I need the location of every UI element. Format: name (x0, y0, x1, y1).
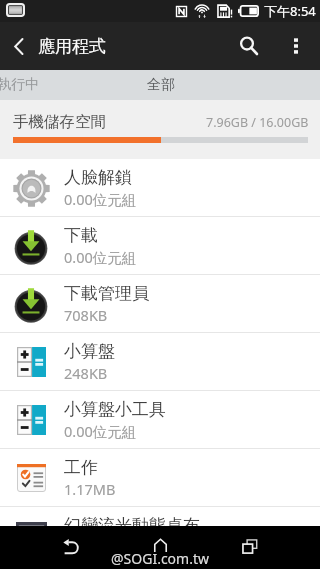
button[interactable]: 小算盤 (0, 333, 320, 390)
button[interactable]: 下載 (0, 217, 320, 274)
staticText: 0.00位元組 (64, 421, 137, 441)
staticText: 0.00位元組 (64, 247, 137, 267)
button[interactable]: 執行中 (0, 70, 70, 100)
button[interactable]: 小算盤小工具 (0, 391, 320, 448)
staticText: 248KB (64, 363, 108, 383)
button[interactable]: More options (272, 22, 320, 70)
staticText: 應用程式 (38, 36, 106, 57)
staticText: 0.00位元組 (64, 537, 137, 557)
staticText: 7.96GB / 16.00GB (206, 114, 309, 131)
staticText: 全部 (147, 76, 175, 94)
button[interactable]: Search (226, 22, 272, 70)
staticText: 幻變流光動態桌布 (64, 515, 200, 536)
button[interactable]: Home (116, 526, 204, 569)
staticText: 手機儲存空間 (13, 112, 106, 132)
staticText: 1.17MB (64, 479, 116, 499)
button[interactable]: 人臉解鎖 (0, 159, 320, 216)
staticText: 708KB (64, 305, 108, 325)
staticText: 下載管理員 (64, 283, 149, 304)
staticText: 工作 (64, 457, 98, 478)
button[interactable]: Recent apps (205, 526, 293, 569)
button[interactable]: 下載管理員 (0, 275, 320, 332)
staticText: 執行中 (0, 76, 39, 94)
button[interactable]: 工作 (0, 449, 320, 506)
button[interactable]: Back (27, 526, 115, 569)
staticText: @SOGI.com.tw (111, 549, 209, 568)
staticText: 下午8:54 (264, 2, 316, 20)
button[interactable]: Back (0, 22, 38, 70)
staticText: 小算盤小工具 (64, 399, 166, 420)
button[interactable]: 幻變流光動態桌布 (0, 507, 320, 564)
staticText: 下載 (64, 225, 98, 246)
staticText: 0.00位元組 (64, 189, 137, 209)
staticText: 人臉解鎖 (64, 167, 132, 188)
button[interactable]: 全部 (116, 70, 206, 100)
staticText: 小算盤 (64, 341, 115, 362)
